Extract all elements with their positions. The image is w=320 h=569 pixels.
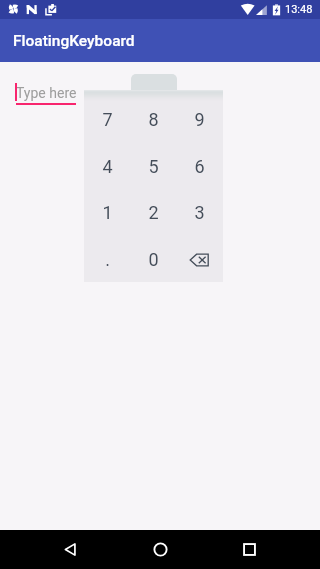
staticText: .	[105, 249, 110, 270]
button[interactable]: Type here	[6, 72, 76, 106]
button[interactable]: 3	[176, 189, 222, 236]
staticText: 6	[194, 156, 205, 177]
button[interactable]: 4	[84, 143, 130, 190]
staticText: 1	[102, 202, 113, 223]
staticText: 2	[148, 202, 159, 223]
button[interactable]: Backspace	[176, 236, 222, 283]
button[interactable]: 7	[84, 96, 130, 143]
button[interactable]: 9	[176, 96, 222, 143]
button[interactable]: Move keyboard	[131, 74, 177, 90]
staticText: FloatingKeyboard	[13, 32, 135, 50]
staticText: Type here	[16, 85, 77, 101]
staticText: 13:48	[285, 3, 313, 16]
staticText: 0	[148, 249, 159, 270]
button[interactable]: 0	[130, 236, 176, 283]
button[interactable]: Back	[51, 530, 90, 569]
button[interactable]: .	[84, 236, 130, 283]
staticText: 8	[148, 109, 159, 130]
staticText: 5	[148, 156, 159, 177]
button[interactable]: 6	[176, 143, 222, 190]
staticText: 4	[102, 156, 113, 177]
button[interactable]: 5	[130, 143, 176, 190]
staticText: 9	[194, 109, 205, 130]
other: Backspace	[189, 250, 209, 270]
button[interactable]: 2	[130, 189, 176, 236]
button[interactable]: Home	[141, 530, 180, 569]
button[interactable]: 8	[130, 96, 176, 143]
staticText: 3	[194, 202, 205, 223]
button[interactable]: Recent apps	[230, 530, 269, 569]
staticText: 7	[102, 109, 113, 130]
button[interactable]: 1	[84, 189, 130, 236]
